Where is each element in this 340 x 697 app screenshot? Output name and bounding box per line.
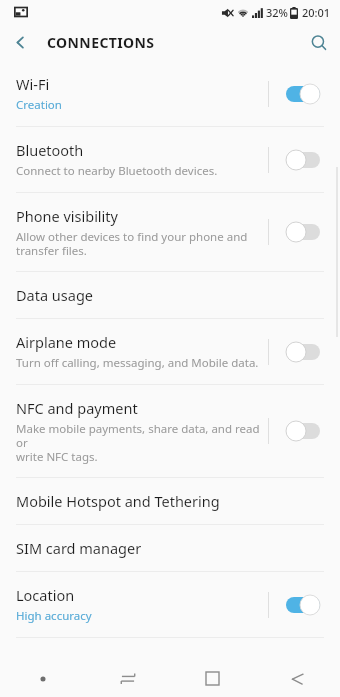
staticText: Creation [16,97,62,113]
button[interactable]: Location [0,572,340,637]
staticText: Data usage [16,285,93,305]
button[interactable]: Bluetooth switch [282,146,324,174]
staticText: Allow other devices to find your phone a… [16,229,248,258]
button[interactable]: SIM card manager [0,525,340,571]
button[interactable]: Phone visibility switch [282,218,324,246]
button[interactable]: Recents [85,660,170,697]
button[interactable]: Wi-Fi switch [282,80,324,108]
staticText: SIM card manager [16,538,142,558]
staticText: Wi-Fi [16,74,50,94]
staticText: Location [16,585,75,605]
button[interactable]: Back [255,660,340,697]
button[interactable]: Location switch [282,591,324,619]
staticText: NFC and payment [16,398,138,418]
staticText: 32% [266,5,288,20]
staticText: Phone visibility [16,206,118,226]
button[interactable]: Back [0,24,40,61]
button[interactable]: Airplane mode switch [282,338,324,366]
staticText: Airplane mode [16,332,117,352]
staticText: Mobile Hotspot and Tethering [16,491,220,511]
staticText: Make mobile payments, share data, and re… [16,421,268,464]
button[interactable]: Menu [0,660,85,697]
button[interactable]: Search [298,24,340,61]
staticText: Turn off calling, messaging, and Mobile … [16,355,259,371]
staticText: CONNECTIONS [47,33,155,52]
button[interactable]: Bluetooth [0,127,340,192]
button[interactable]: Home [170,660,255,697]
button[interactable]: NFC and payment switch [282,417,324,445]
staticText: High accuracy [16,608,92,624]
button[interactable]: Wi-Fi [0,61,340,126]
button[interactable]: Airplane mode [0,319,340,384]
button[interactable]: Mobile Hotspot and Tethering [0,478,340,524]
staticText: Bluetooth [16,140,84,160]
button[interactable]: NFC and payment [0,385,340,477]
button[interactable]: Data usage [0,272,340,318]
staticText: Connect to nearby Bluetooth devices. [16,163,218,179]
button[interactable]: Phone visibility [0,193,340,271]
staticText: 20:01 [302,5,331,20]
